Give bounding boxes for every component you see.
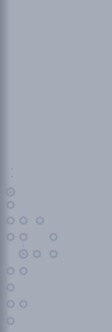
button[interactable]: Row — [0, 263, 112, 279]
button[interactable]: Row — [0, 279, 112, 296]
button[interactable]: Row — [0, 212, 112, 229]
button[interactable]: Row — [0, 296, 112, 312]
button[interactable]: Row — [0, 313, 112, 329]
button[interactable]: Row — [0, 229, 112, 245]
button[interactable]: Row — [0, 197, 112, 213]
button[interactable]: Row — [0, 246, 112, 262]
button[interactable]: Row — [0, 184, 112, 200]
